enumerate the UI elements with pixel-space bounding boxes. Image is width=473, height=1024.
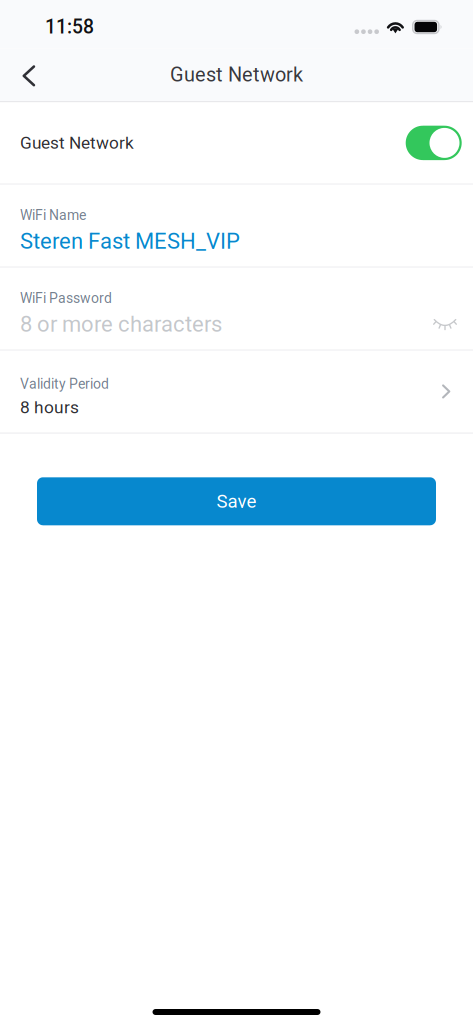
staticText: Steren Fast MESH_VIP <box>20 228 240 254</box>
staticText: WiFi Password <box>20 290 112 306</box>
button[interactable]: Guest Network <box>406 126 462 160</box>
staticText: Validity Period <box>20 376 109 392</box>
button[interactable]: Back <box>0 48 58 101</box>
button[interactable]: WiFi Password <box>0 268 473 351</box>
button[interactable]: WiFi Name <box>0 185 473 268</box>
staticText: Guest Network <box>20 133 134 153</box>
staticText: 8 hours <box>20 397 79 417</box>
staticText: 11:58 <box>45 16 94 38</box>
staticText: Guest Network <box>170 63 303 86</box>
button[interactable]: Validity Period <box>0 351 473 434</box>
staticText: WiFi Name <box>20 207 86 223</box>
button[interactable]: Save <box>37 477 436 525</box>
staticText: Save <box>216 490 256 512</box>
staticText: 8 or more characters <box>20 311 222 337</box>
